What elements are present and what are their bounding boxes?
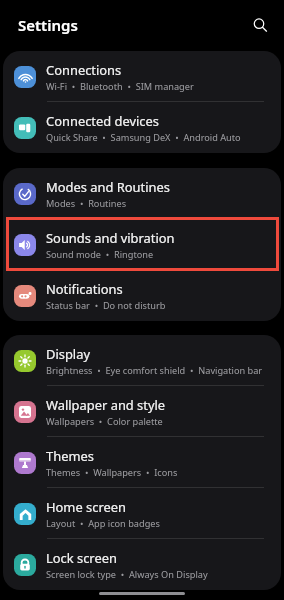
staticText: Display — [46, 345, 90, 363]
button[interactable]: Connected devices — [3, 102, 281, 153]
staticText: Notifications — [46, 280, 123, 298]
staticText: Quick Share • Samsung DeX • Android Auto — [46, 131, 241, 144]
staticText: Connected devices — [46, 112, 159, 130]
staticText: Modes • Routines — [46, 197, 127, 210]
button[interactable]: Search — [247, 12, 273, 38]
staticText: Lock screen — [46, 549, 117, 567]
staticText: Settings — [18, 15, 78, 35]
staticText: Wi-Fi • Bluetooth • SIM manager — [46, 80, 194, 93]
button[interactable]: Lock screen — [3, 539, 281, 590]
staticText: Sounds and vibration — [46, 229, 175, 247]
staticText: Themes • Wallpapers • Icons — [46, 466, 178, 479]
button[interactable]: Themes — [3, 437, 281, 488]
staticText: Status bar • Do not disturb — [46, 299, 166, 312]
button[interactable]: Home screen — [3, 488, 281, 539]
staticText: Sound mode • Ringtone — [46, 248, 154, 261]
staticText: Themes — [46, 447, 94, 465]
button[interactable]: Modes and Routines — [3, 168, 281, 219]
staticText: Layout • App icon badges — [46, 517, 160, 530]
staticText: Brightness • Eye comfort shield • Naviga… — [46, 364, 263, 377]
staticText: Modes and Routines — [46, 178, 170, 196]
staticText: Connections — [46, 61, 122, 79]
staticText: Wallpapers • Color palette — [46, 415, 163, 428]
staticText: Wallpaper and style — [46, 396, 166, 414]
staticText: Home screen — [46, 498, 126, 516]
button[interactable]: Sounds and vibration — [3, 219, 281, 270]
button[interactable]: Notifications — [3, 270, 281, 321]
button[interactable]: Wallpaper and style — [3, 386, 281, 437]
staticText: Screen lock type • Always On Display — [46, 568, 208, 581]
button[interactable]: Display — [3, 335, 281, 386]
button[interactable]: Connections — [3, 51, 281, 102]
